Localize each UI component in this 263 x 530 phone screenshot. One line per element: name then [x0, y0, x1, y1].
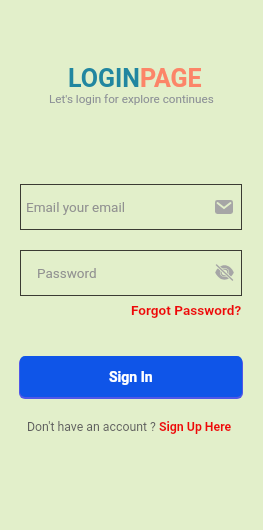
button[interactable]: Password [20, 250, 242, 296]
staticText: Don't have an account ? [27, 420, 159, 434]
staticText: LOGINPAGE [68, 64, 202, 93]
other: Toggle password visibility [215, 264, 234, 281]
other: Email [215, 200, 233, 214]
button[interactable]: Sign Up Here [159, 418, 232, 436]
staticText: Password [37, 265, 97, 281]
staticText: Sign Up Here [159, 420, 232, 434]
button[interactable]: Show password [208, 257, 240, 289]
button[interactable]: Email your email [20, 184, 242, 230]
staticText: Email your email [26, 199, 126, 215]
staticText: Sign In [109, 369, 153, 385]
staticText: Let's login for explore continues [49, 92, 214, 106]
button[interactable]: Forgot Password? [131, 300, 263, 320]
button[interactable]: Sign In [20, 356, 242, 397]
staticText: Forgot Password? [131, 302, 242, 318]
